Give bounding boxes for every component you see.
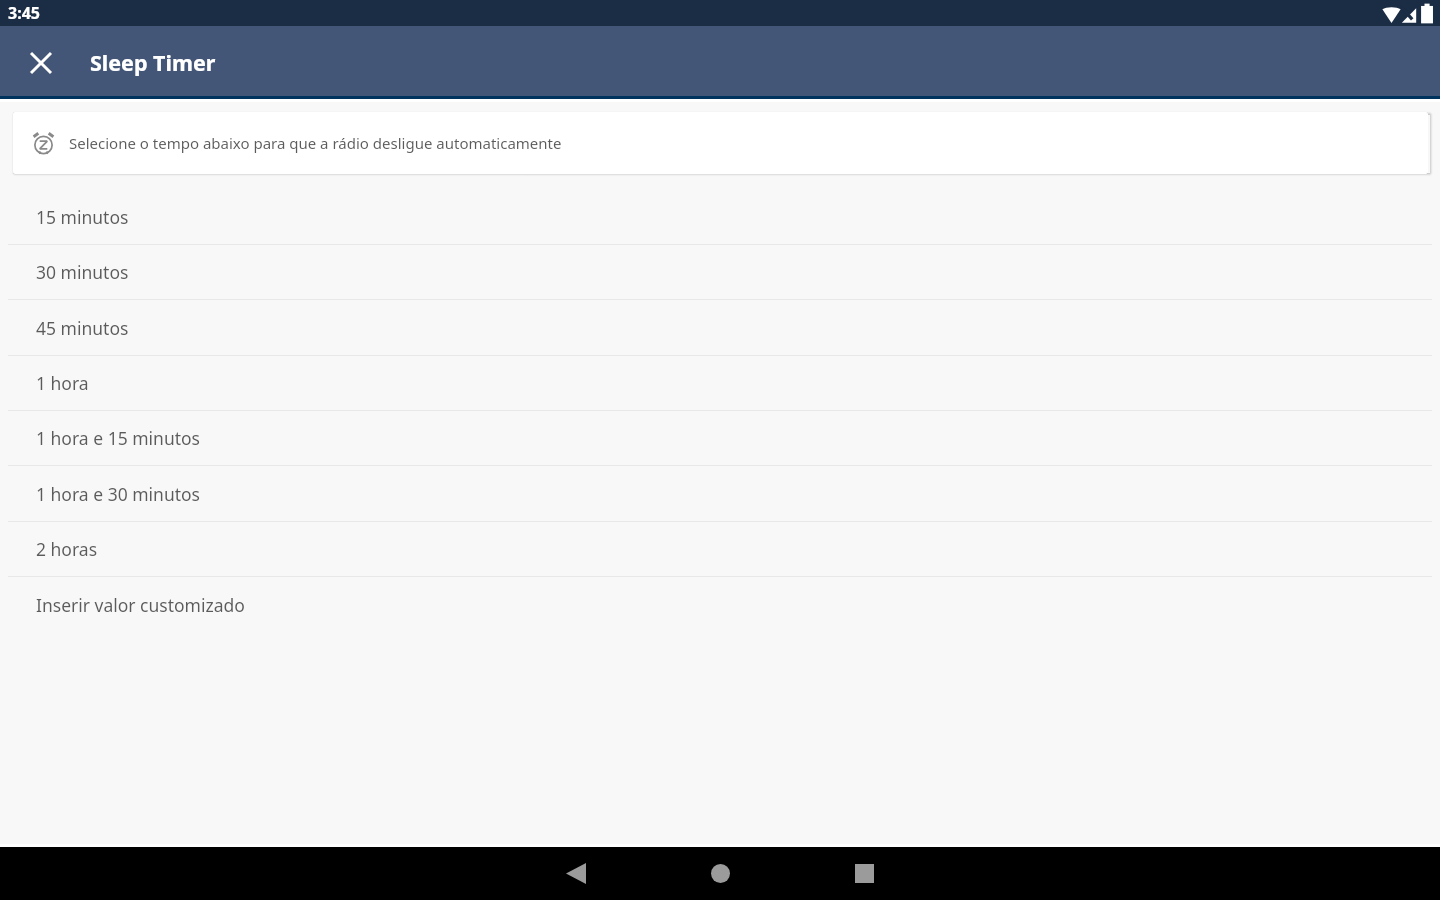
button[interactable]: 45 minutos <box>0 300 1440 355</box>
button[interactable]: Inserir valor customizado <box>0 577 1440 632</box>
button[interactable]: Close <box>13 33 69 89</box>
staticText: 1 hora <box>36 371 89 395</box>
staticText: 1 hora e 15 minutos <box>36 426 200 450</box>
button[interactable]: 1 hora e 15 minutos <box>0 411 1440 465</box>
staticText: 1 hora e 30 minutos <box>36 482 200 506</box>
staticText: 30 minutos <box>36 260 129 284</box>
staticText: 3:45 <box>8 2 40 24</box>
staticText: Inserir valor customizado <box>36 593 245 617</box>
staticText: 2 horas <box>36 537 98 561</box>
button[interactable]: 30 minutos <box>0 245 1440 299</box>
staticText: 15 minutos <box>36 205 129 229</box>
button[interactable]: Back <box>540 847 612 900</box>
button[interactable]: 2 horas <box>0 522 1440 576</box>
button[interactable]: 1 hora e 30 minutos <box>0 466 1440 521</box>
staticText: Selecione o tempo abaixo para que a rádi… <box>69 133 562 153</box>
button[interactable]: 15 minutos <box>0 189 1440 244</box>
staticText: Sleep Timer <box>90 48 216 77</box>
staticText: 45 minutos <box>36 316 129 340</box>
button[interactable]: Home <box>684 847 756 900</box>
button[interactable]: Recents <box>828 847 900 900</box>
button[interactable]: 1 hora <box>0 356 1440 410</box>
